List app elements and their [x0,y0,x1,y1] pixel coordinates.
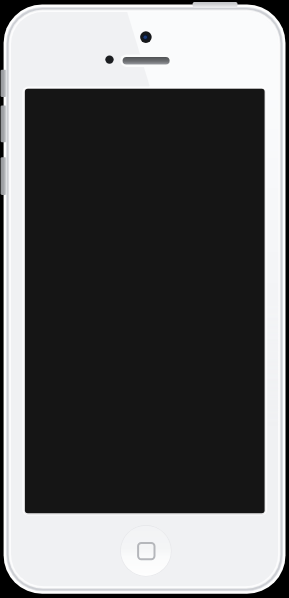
button[interactable]: Display [25,89,265,514]
button[interactable]: Volume up [1,105,7,142]
button[interactable]: Home [121,526,171,576]
button[interactable]: Ring/Silent switch [1,70,7,97]
button[interactable]: Volume down [1,157,7,195]
button[interactable]: Power [193,0,238,8]
